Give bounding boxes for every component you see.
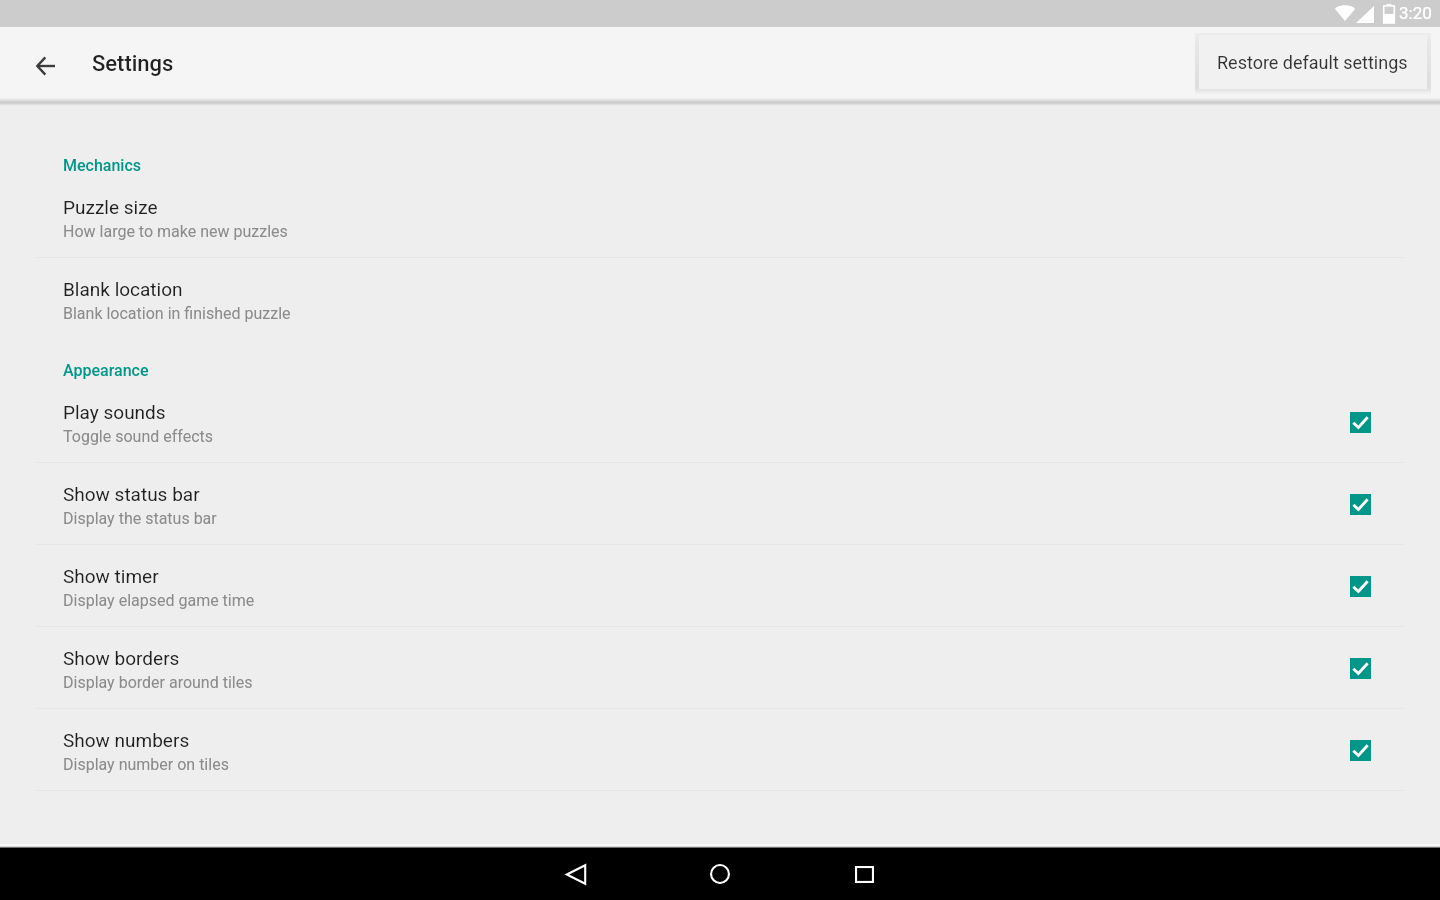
staticText: Mechanics (63, 156, 141, 175)
button[interactable]: Puzzle size (0, 176, 1440, 258)
button[interactable]: Show timer (0, 545, 1440, 627)
button[interactable]: Show status bar (1336, 480, 1384, 528)
button[interactable]: Show timer (1336, 562, 1384, 610)
staticText: Settings (92, 51, 174, 77)
staticText: Play sounds (63, 401, 166, 423)
button[interactable]: Blank location (0, 258, 1440, 340)
staticText: Puzzle size (63, 196, 158, 218)
staticText: Blank location (63, 278, 183, 300)
button[interactable]: Show numbers (1336, 726, 1384, 774)
staticText: Restore default settings (1217, 52, 1408, 73)
button[interactable]: Navigate up (22, 40, 70, 88)
staticText: Display number on tiles (63, 755, 229, 774)
button[interactable]: Show numbers (0, 709, 1440, 791)
staticText: Show status bar (63, 483, 200, 505)
button[interactable]: Show borders (1336, 644, 1384, 692)
staticText: How large to make new puzzles (63, 222, 288, 241)
button[interactable]: Recent apps (792, 848, 936, 900)
button[interactable]: Play sounds (1336, 398, 1384, 446)
staticText: Display the status bar (63, 509, 217, 528)
button[interactable]: Back (504, 848, 648, 900)
button[interactable]: Home (648, 848, 792, 900)
staticText: Toggle sound effects (63, 427, 214, 446)
button[interactable]: Show status bar (0, 463, 1440, 545)
staticText: Blank location in finished puzzle (63, 304, 291, 323)
staticText: Show borders (63, 647, 180, 669)
staticText: Show numbers (63, 729, 190, 751)
button[interactable]: Restore default settings (1199, 35, 1427, 89)
staticText: 3:20 (1399, 3, 1432, 23)
staticText: Display elapsed game time (63, 591, 255, 610)
staticText: Show timer (63, 565, 159, 587)
staticText: Appearance (63, 361, 149, 380)
button[interactable]: Show borders (0, 627, 1440, 709)
staticText: Display border around tiles (63, 673, 253, 692)
button[interactable]: Play sounds (0, 381, 1440, 463)
